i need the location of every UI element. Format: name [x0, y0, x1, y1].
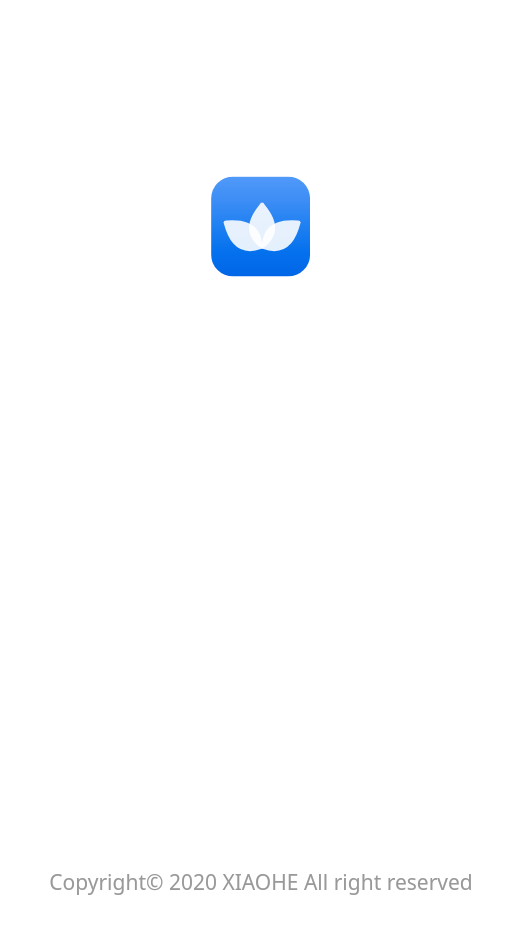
staticText: Copyright© 2020 XIAOHE All right reserve…	[0, 868, 522, 897]
button[interactable]: XIAOHE logo	[211, 177, 310, 277]
